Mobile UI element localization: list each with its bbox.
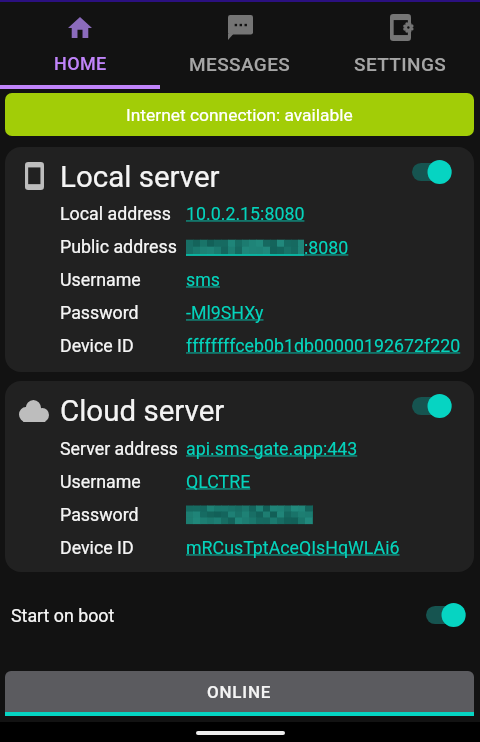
staticText: Cloud server [60, 394, 225, 429]
staticText: 10.0.2.15:8080 [186, 203, 305, 224]
staticText: -Ml9SHXy [186, 302, 264, 323]
staticText: Public address [60, 236, 177, 257]
staticText: sms [186, 269, 220, 290]
staticText: Device ID [60, 335, 134, 356]
button[interactable]: Toggle [409, 389, 463, 423]
button[interactable]: ONLINE [5, 671, 474, 712]
staticText: Device ID [60, 537, 134, 558]
staticText: Username [60, 269, 141, 290]
staticText: Username [60, 471, 141, 492]
staticText: mRCusTptAceQIsHqWLAi6 [186, 537, 400, 558]
staticText: Start on boot [11, 605, 115, 626]
button[interactable]: MESSAGES [160, 0, 320, 89]
button[interactable] [5, 381, 474, 572]
staticText: Password [60, 504, 139, 525]
button[interactable]: Internet connection: available [5, 93, 474, 136]
staticText: QLCTRE [186, 471, 251, 492]
staticText: Server address [60, 438, 179, 459]
staticText: SETTINGS [354, 53, 447, 75]
button[interactable]: Start on boot [11, 592, 477, 638]
staticText: HOME [54, 53, 107, 74]
staticText: Local address [60, 203, 171, 224]
button[interactable]: SETTINGS [320, 0, 480, 89]
button[interactable]: Toggle [423, 598, 477, 632]
button[interactable]: Toggle [409, 155, 463, 189]
staticText: :8080 [304, 237, 349, 258]
staticText: ffffffffceb0b1db00000192672f220 [186, 335, 461, 356]
staticText: MESSAGES [189, 53, 291, 75]
staticText: api.sms-gate.app:443 [186, 438, 358, 459]
staticText: ONLINE [207, 682, 272, 702]
button[interactable] [5, 147, 474, 372]
staticText: Local server [60, 160, 220, 195]
button[interactable]: HOME [0, 0, 160, 89]
staticText: Internet connection: available [126, 105, 353, 125]
staticText: Password [60, 302, 139, 323]
